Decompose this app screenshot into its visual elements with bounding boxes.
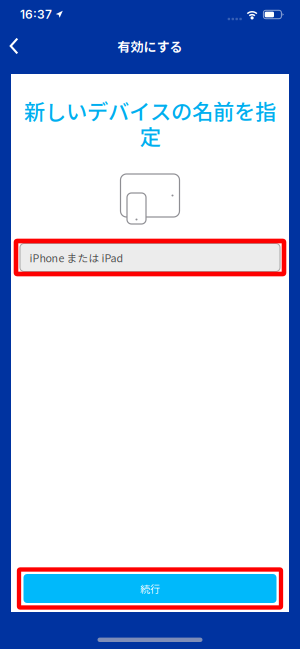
button[interactable]: iPhone または iPad xyxy=(19,243,280,272)
staticText: iPhone または iPad xyxy=(29,250,123,265)
button[interactable]: Back xyxy=(1,29,27,63)
staticText: 新しいデバイスの名前を指 xyxy=(24,95,276,126)
staticText: 続行 xyxy=(140,581,160,596)
staticText: 有効にする xyxy=(117,37,182,55)
staticText: 16:37 xyxy=(20,7,52,22)
staticText: 定 xyxy=(139,120,160,151)
button[interactable]: 続行 xyxy=(23,574,276,603)
